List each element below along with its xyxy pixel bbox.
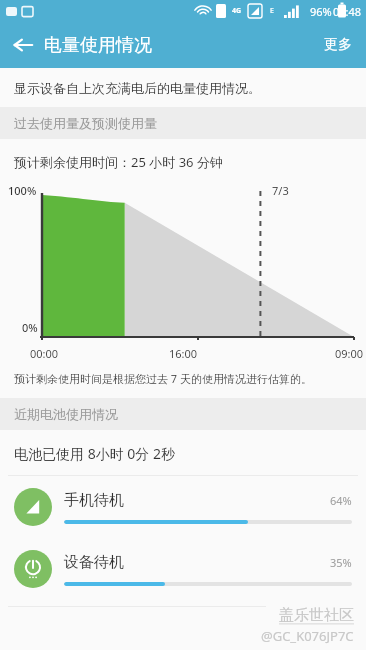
- staticText: 00:00: [30, 346, 59, 361]
- staticText: 09:00: [335, 346, 364, 361]
- button[interactable]: 更多: [310, 24, 366, 66]
- staticText: 4G: [232, 6, 242, 16]
- staticText: 过去使用量及预测使用量: [14, 115, 157, 131]
- staticText: 电量使用情况: [44, 34, 152, 57]
- staticText: 0%: [22, 320, 38, 335]
- button[interactable]: 设备待机: [0, 538, 366, 600]
- staticText: 更多: [324, 36, 352, 54]
- staticText: 电池已使用 8小时 0分 2秒: [14, 444, 175, 463]
- staticText: @GC_K076JP7C: [261, 627, 354, 645]
- staticText: 07:48: [333, 4, 362, 19]
- staticText: 100%: [8, 183, 37, 198]
- staticText: 盖乐世社区: [279, 606, 354, 625]
- staticText: 64%: [330, 493, 352, 508]
- staticText: 显示设备自上次充满电后的电量使用情况。: [14, 80, 261, 96]
- staticText: 预计剩余使用时间：25 小时 36 分钟: [14, 153, 223, 171]
- staticText: 35%: [330, 555, 352, 570]
- button[interactable]: 手机待机: [0, 476, 366, 538]
- staticText: 预计剩余使用时间是根据您过去 7 天的使用情况进行估算的。: [14, 371, 313, 386]
- staticText: E: [270, 6, 274, 16]
- staticText: 96%: [310, 4, 332, 19]
- staticText: 7/3: [272, 183, 289, 198]
- staticText: 手机待机: [64, 491, 124, 510]
- staticText: 设备待机: [64, 553, 124, 572]
- staticText: 近期电池使用情况: [14, 406, 118, 422]
- button[interactable]: Back: [0, 22, 46, 68]
- staticText: 16:00: [169, 346, 198, 361]
